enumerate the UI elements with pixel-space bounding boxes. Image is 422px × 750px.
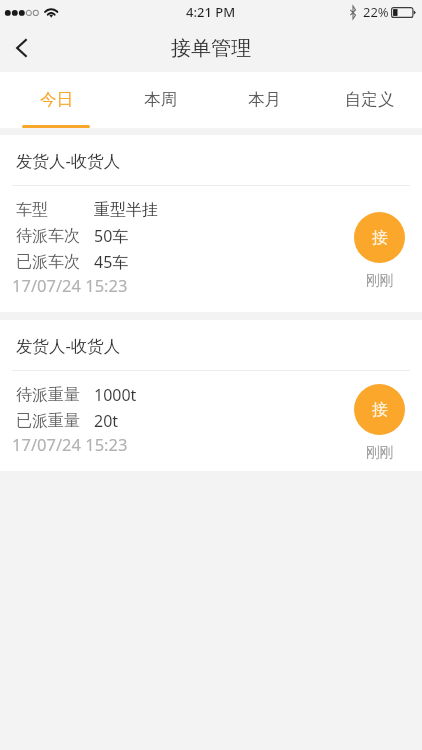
staticText: 车型 bbox=[16, 200, 48, 220]
staticText: 已派重量 bbox=[16, 411, 80, 431]
staticText: 接 bbox=[372, 228, 388, 248]
staticText: 发货人-收货人 bbox=[16, 149, 121, 172]
button[interactable]: 本周 bbox=[108, 72, 212, 128]
button[interactable]: 接 bbox=[354, 384, 405, 435]
staticText: 本月 bbox=[248, 89, 281, 110]
staticText: 20t bbox=[94, 410, 119, 432]
staticText: 重型半挂 bbox=[94, 200, 158, 220]
staticText: 已派车次 bbox=[16, 252, 80, 272]
staticText: 刚刚 bbox=[366, 272, 393, 289]
staticText: 待派重量 bbox=[16, 385, 80, 405]
staticText: 发货人-收货人 bbox=[16, 334, 121, 357]
staticText: 22% bbox=[363, 3, 389, 21]
staticText: 17/07/24 15:23 bbox=[12, 274, 128, 296]
staticText: 待派车次 bbox=[16, 226, 80, 246]
button[interactable]: 今日 bbox=[4, 72, 108, 128]
staticText: 接 bbox=[372, 400, 388, 420]
staticText: 45车 bbox=[94, 251, 129, 273]
button[interactable]: 本月 bbox=[212, 72, 317, 128]
staticText: 4:21 PM bbox=[186, 3, 236, 21]
staticText: 1000t bbox=[94, 384, 137, 406]
staticText: 自定义 bbox=[345, 89, 395, 110]
staticText: 本周 bbox=[144, 89, 177, 110]
staticText: 50车 bbox=[94, 225, 129, 247]
button[interactable]: 自定义 bbox=[317, 72, 422, 128]
button[interactable]: Back bbox=[0, 24, 46, 72]
staticText: 刚刚 bbox=[366, 444, 393, 461]
button[interactable]: 接 bbox=[354, 212, 405, 263]
staticText: 17/07/24 15:23 bbox=[12, 433, 128, 455]
staticText: 接单管理 bbox=[171, 36, 251, 61]
staticText: 今日 bbox=[40, 89, 73, 110]
